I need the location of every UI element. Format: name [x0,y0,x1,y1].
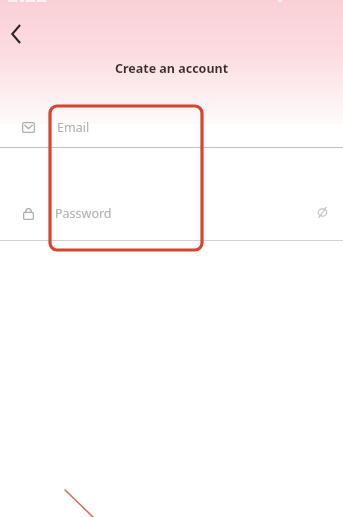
staticText: Email [57,119,90,136]
staticText: Create an account [0,60,343,77]
staticText: Password [55,205,112,222]
button[interactable]: Back [2,20,32,48]
button[interactable]: Show password [308,198,336,226]
button[interactable]: Email [0,108,343,146]
button[interactable]: Password [0,196,343,230]
